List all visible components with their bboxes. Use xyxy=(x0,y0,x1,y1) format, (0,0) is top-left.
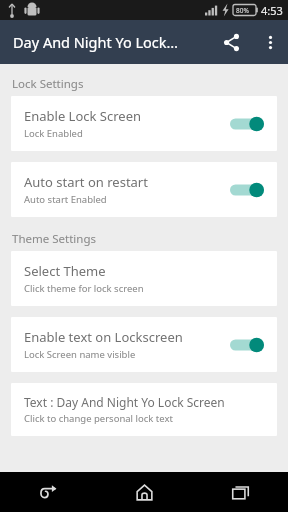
staticText: Click to change personal lock text xyxy=(24,412,173,425)
button[interactable]: Back xyxy=(0,472,96,512)
button[interactable]: Enable Lock Screen xyxy=(11,96,277,151)
button[interactable]: Text : Day And Night Yo Lock Screen xyxy=(11,383,277,436)
staticText: Lock Enabled xyxy=(24,127,83,140)
staticText: Select Theme xyxy=(24,262,106,280)
button[interactable]: Select Theme xyxy=(11,251,277,306)
button[interactable]: Recent apps xyxy=(192,472,288,512)
button[interactable]: More options xyxy=(252,24,288,60)
staticText: Day And Night Yo Lock… xyxy=(13,32,203,52)
staticText: Lock Settings xyxy=(12,76,84,92)
staticText: Click theme for lock screen xyxy=(24,282,144,295)
button[interactable]: Toggle setting xyxy=(228,334,268,356)
button[interactable]: Auto start on restart xyxy=(11,162,277,217)
staticText: Enable text on Lockscreen xyxy=(24,328,183,346)
staticText: Enable Lock Screen xyxy=(24,107,142,125)
staticText: Text : Day And Night Yo Lock Screen xyxy=(24,394,225,410)
button[interactable]: Home xyxy=(96,472,192,512)
button[interactable]: Toggle setting xyxy=(228,113,268,135)
button[interactable]: Enable text on Lockscreen xyxy=(11,317,277,372)
staticText: 4:53 xyxy=(261,3,283,18)
staticText: Lock Screen name visible xyxy=(24,348,136,361)
button[interactable]: Share xyxy=(210,21,252,63)
button[interactable]: Toggle setting xyxy=(228,179,268,201)
staticText: Theme Settings xyxy=(12,231,96,247)
staticText: Auto start on restart xyxy=(24,173,148,191)
staticText: Auto start Enabled xyxy=(24,193,107,206)
staticText: 80% xyxy=(236,6,249,15)
